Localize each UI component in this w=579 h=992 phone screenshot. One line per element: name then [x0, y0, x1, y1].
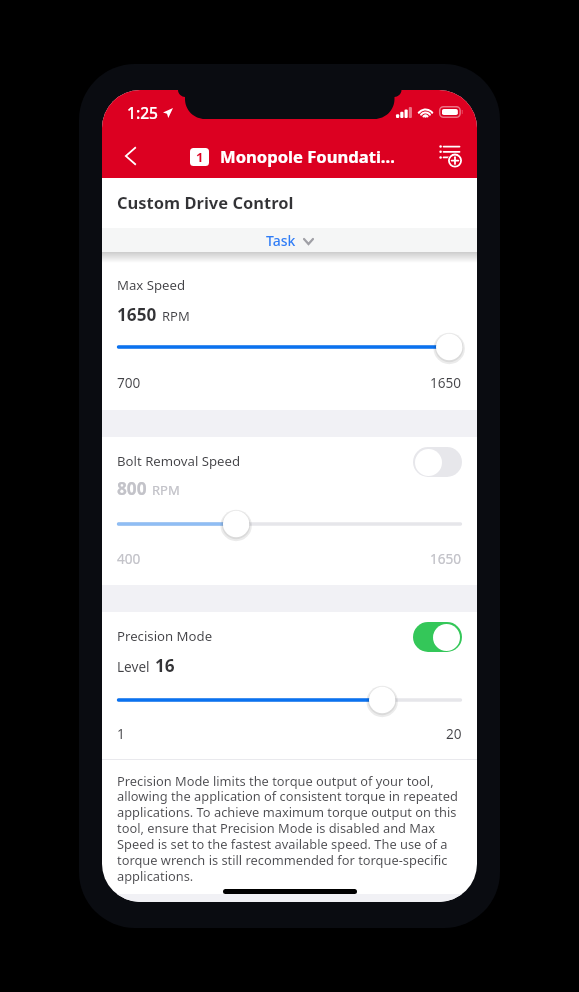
button[interactable]: Add to list — [428, 134, 472, 178]
staticText: 800 — [117, 477, 147, 500]
staticText: 1 — [117, 724, 125, 743]
staticText: 1650 — [117, 303, 157, 326]
staticText: 400 — [117, 549, 141, 568]
button[interactable]: Task — [102, 228, 477, 252]
staticText: 1650 — [430, 549, 462, 568]
staticText: 1:25 — [127, 102, 159, 123]
button[interactable]: Switch on — [413, 622, 462, 652]
staticText: 20 — [446, 724, 462, 743]
staticText: Max Speed — [117, 276, 186, 294]
staticText: RPM — [162, 307, 190, 325]
button[interactable]: Precision Mode slider — [102, 687, 477, 713]
button[interactable]: Switch off — [413, 447, 462, 477]
staticText: 1 — [196, 148, 204, 166]
staticText: Bolt Removal Speed — [117, 452, 241, 470]
button[interactable]: Bolt Removal Speed slider — [102, 511, 477, 537]
staticText: Task — [266, 231, 296, 250]
staticText: Monopole Foundati... — [220, 145, 395, 168]
staticText: 700 — [117, 373, 141, 392]
staticText: 1650 — [430, 373, 462, 392]
staticText: Precision Mode limits the torque output … — [117, 772, 458, 885]
staticText: Level — [117, 657, 150, 676]
staticText: 16 — [155, 654, 175, 677]
button[interactable]: Back — [108, 134, 152, 178]
staticText: RPM — [152, 481, 180, 499]
button[interactable]: Max Speed slider — [102, 334, 477, 360]
staticText: Precision Mode — [117, 627, 213, 645]
staticText: Custom Drive Control — [117, 191, 294, 213]
